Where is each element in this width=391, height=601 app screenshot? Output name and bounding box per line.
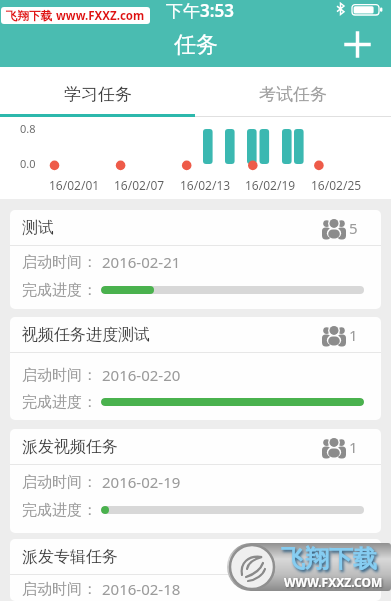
- staticText: 飞翔下载: [281, 544, 377, 574]
- button[interactable]: 考试任务: [195, 67, 391, 117]
- staticText: 2016-02-19: [102, 472, 181, 492]
- staticText: 0.8: [20, 121, 36, 136]
- staticText: 完成进度：: [22, 393, 97, 412]
- staticText: 视频任务进度测试: [22, 325, 150, 345]
- staticText: 1: [349, 437, 358, 457]
- staticText: 完成进度：: [22, 501, 97, 520]
- staticText: 2016-02-18: [102, 579, 181, 599]
- staticText: 飞翔下载: [6, 9, 52, 23]
- staticText: 下午3:53: [166, 0, 234, 21]
- staticText: 启动时间：: [22, 366, 97, 385]
- staticText: WWW.FXXZ.COM: [284, 574, 383, 590]
- staticText: 16/02/07: [114, 177, 165, 193]
- staticText: 派发专辑任务: [22, 547, 118, 567]
- staticText: 2016-02-21: [102, 252, 181, 272]
- staticText: 完成进度：: [22, 281, 97, 300]
- staticText: 2016-02-20: [102, 365, 181, 385]
- button[interactable]: [334, 22, 380, 67]
- button[interactable]: 学习任务: [0, 67, 195, 117]
- button[interactable]: 派发专辑任务: [10, 539, 381, 601]
- staticText: 0.0: [20, 156, 36, 171]
- staticText: 16/02/01: [49, 177, 100, 193]
- staticText: 16/02/19: [245, 177, 296, 193]
- staticText: 考试任务: [259, 84, 327, 105]
- button[interactable]: 派发视频任务: [10, 429, 381, 533]
- staticText: www.FXXZ.com: [56, 8, 145, 24]
- staticText: 16/02/25: [311, 177, 362, 193]
- button[interactable]: 视频任务进度测试: [10, 317, 381, 420]
- staticText: 启动时间：: [22, 253, 97, 272]
- staticText: 启动时间：: [22, 580, 97, 599]
- staticText: 16/02/13: [180, 177, 231, 193]
- staticText: 5: [349, 218, 358, 238]
- staticText: 测试: [22, 218, 54, 238]
- staticText: 派发视频任务: [22, 437, 118, 457]
- staticText: 启动时间：: [22, 473, 97, 492]
- staticText: 学习任务: [64, 84, 132, 105]
- button[interactable]: 测试: [10, 210, 381, 309]
- staticText: 1: [349, 547, 358, 567]
- staticText: 1: [349, 325, 358, 345]
- staticText: 任务: [174, 31, 218, 59]
